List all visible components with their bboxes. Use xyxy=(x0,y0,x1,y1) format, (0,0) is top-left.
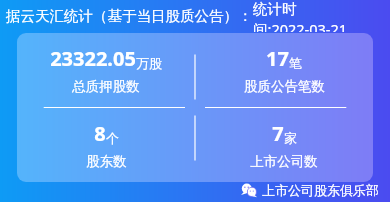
staticText: 笔 xyxy=(289,55,302,71)
button[interactable]: WeChat xyxy=(239,180,381,200)
staticText: 股质公告笔数 xyxy=(244,78,325,95)
staticText: 家 xyxy=(284,130,297,146)
button[interactable]: 7 xyxy=(195,107,373,182)
staticText: 7 xyxy=(272,120,284,147)
staticText: 个 xyxy=(106,130,119,146)
staticText: 上市公司数 xyxy=(250,153,318,170)
staticText: 上市公司股东俱乐部 xyxy=(262,182,379,198)
button[interactable]: 8 xyxy=(17,107,195,182)
button[interactable]: 17 xyxy=(195,33,373,107)
staticText: 据云天汇统计（基于当日股质公告）： xyxy=(6,7,253,25)
other: WeChat xyxy=(241,182,257,198)
staticText: 股东数 xyxy=(86,153,127,170)
staticText: 总质押股数 xyxy=(72,78,140,95)
staticText: 23322.05 xyxy=(50,45,136,72)
staticText: 统计时间:2022-03-21 xyxy=(253,0,382,32)
staticText: 8 xyxy=(94,120,106,147)
staticText: 万股 xyxy=(136,55,162,71)
button[interactable]: 23322.05 xyxy=(17,33,195,107)
staticText: 17 xyxy=(266,45,289,72)
